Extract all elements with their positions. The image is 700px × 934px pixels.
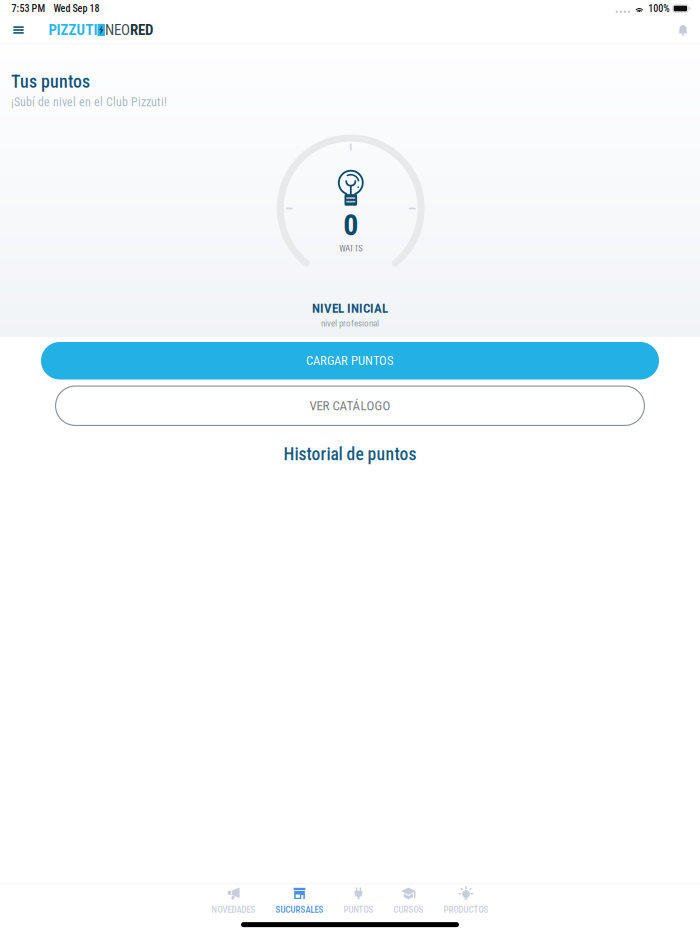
- staticText: 0: [343, 207, 358, 243]
- button[interactable]: Menu: [1, 17, 36, 43]
- button[interactable]: PUNTOS: [343, 883, 373, 915]
- staticText: 7:53 PM: [11, 3, 45, 14]
- staticText: NIVEL INICIAL: [312, 301, 388, 316]
- button[interactable]: VER CATÁLOGO: [55, 385, 645, 426]
- staticText: VER CATÁLOGO: [309, 398, 390, 413]
- staticText: CURSOS: [393, 904, 423, 915]
- staticText: SUCURSALES: [275, 904, 323, 915]
- staticText: CARGAR PUNTOS: [306, 353, 394, 368]
- staticText: NEO: [105, 21, 130, 39]
- button[interactable]: CARGAR PUNTOS: [41, 342, 659, 379]
- button[interactable]: NOVEDADES: [211, 883, 255, 915]
- button[interactable]: Historial de puntos: [283, 426, 416, 473]
- button[interactable]: CURSOS: [393, 883, 423, 915]
- staticText: PIZZUTI: [48, 21, 97, 39]
- button[interactable]: SUCURSALES: [275, 883, 323, 915]
- staticText: 100%: [648, 3, 669, 14]
- button[interactable]: Notifications: [666, 17, 700, 43]
- staticText: WATTS: [339, 244, 362, 254]
- staticText: RED: [130, 21, 153, 39]
- staticText: Tus puntos: [11, 71, 90, 92]
- button[interactable]: PRODUCTOS: [443, 883, 488, 915]
- staticText: ¡Subí de nivel en el Club Pizzuti!: [11, 95, 167, 109]
- staticText: nivel profesional: [321, 318, 379, 329]
- staticText: PUNTOS: [343, 904, 373, 915]
- staticText: NOVEDADES: [211, 904, 255, 915]
- staticText: Historial de puntos: [283, 444, 416, 465]
- staticText: Wed Sep 18: [53, 3, 99, 14]
- staticText: PRODUCTOS: [443, 904, 488, 915]
